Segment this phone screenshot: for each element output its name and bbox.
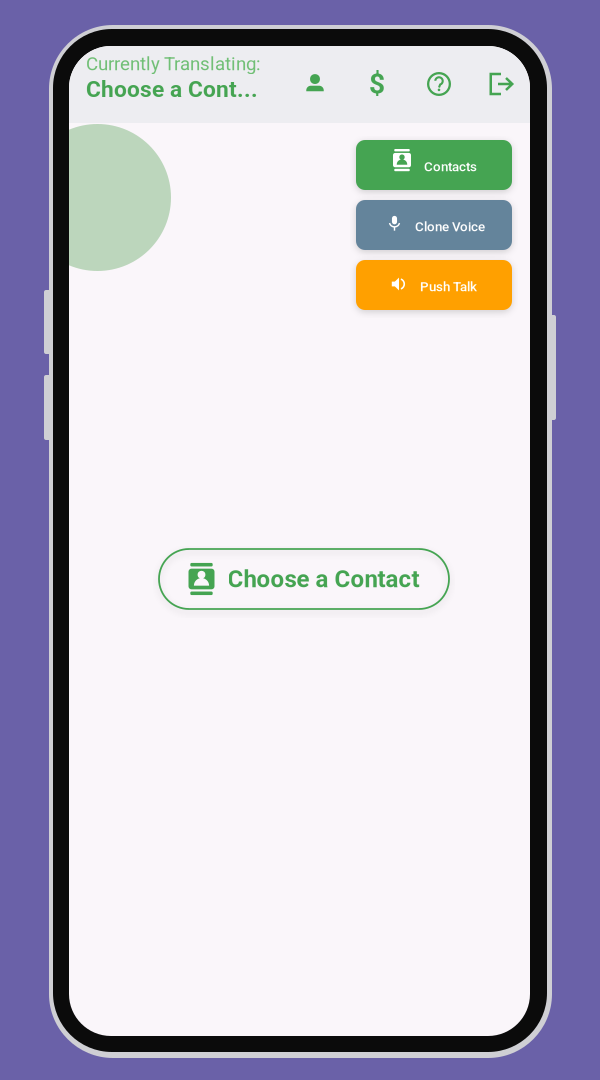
staticText: Contacts bbox=[424, 159, 477, 175]
staticText: Choose a Cont... bbox=[86, 76, 258, 103]
staticText: Choose a Contact bbox=[227, 565, 419, 593]
button[interactable]: Clone Voice bbox=[356, 200, 512, 250]
staticText: Currently Translating: bbox=[86, 53, 261, 75]
button[interactable]: Sign out bbox=[480, 63, 522, 105]
button[interactable]: Profile bbox=[294, 63, 336, 105]
button[interactable]: Choose a Contact bbox=[159, 549, 449, 609]
button[interactable]: Push Talk bbox=[356, 260, 512, 310]
button[interactable]: Contacts bbox=[356, 140, 512, 190]
staticText: $ bbox=[369, 68, 385, 100]
button[interactable]: Billing bbox=[356, 63, 398, 105]
staticText: Push Talk bbox=[420, 279, 477, 295]
button[interactable]: Help bbox=[418, 63, 460, 105]
staticText: Clone Voice bbox=[415, 219, 485, 235]
